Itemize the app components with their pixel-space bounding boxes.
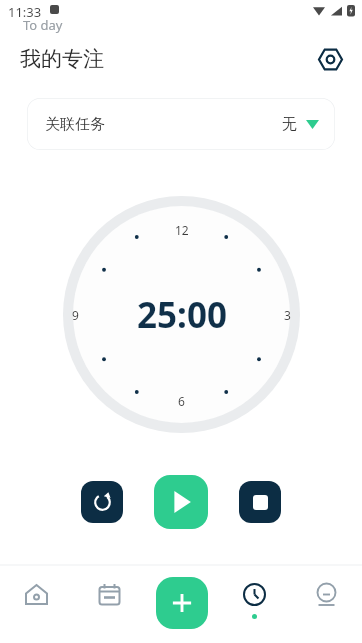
staticText: 25:00	[137, 291, 227, 339]
button[interactable]: Settings	[312, 41, 348, 77]
staticText: To day	[23, 16, 63, 34]
button[interactable]: Reset	[81, 481, 123, 523]
staticText: 12	[175, 222, 189, 238]
staticText: 9	[72, 307, 79, 323]
staticText: 我的专注	[20, 46, 104, 72]
staticText: 11:33	[8, 3, 42, 21]
staticText: 6	[178, 393, 185, 409]
button[interactable]: Home	[0, 565, 73, 643]
button[interactable]: Add	[156, 577, 208, 629]
button[interactable]: Profile	[290, 565, 362, 643]
button[interactable]: Calendar	[73, 565, 146, 643]
button[interactable]: Play	[154, 475, 208, 529]
button[interactable]: 关联任务	[27, 98, 335, 150]
button[interactable]: Stop	[239, 481, 281, 523]
staticText: 关联任务	[45, 115, 105, 134]
staticText: 无	[282, 115, 297, 134]
staticText: 3	[284, 307, 291, 323]
button[interactable]: Focus	[218, 565, 290, 643]
